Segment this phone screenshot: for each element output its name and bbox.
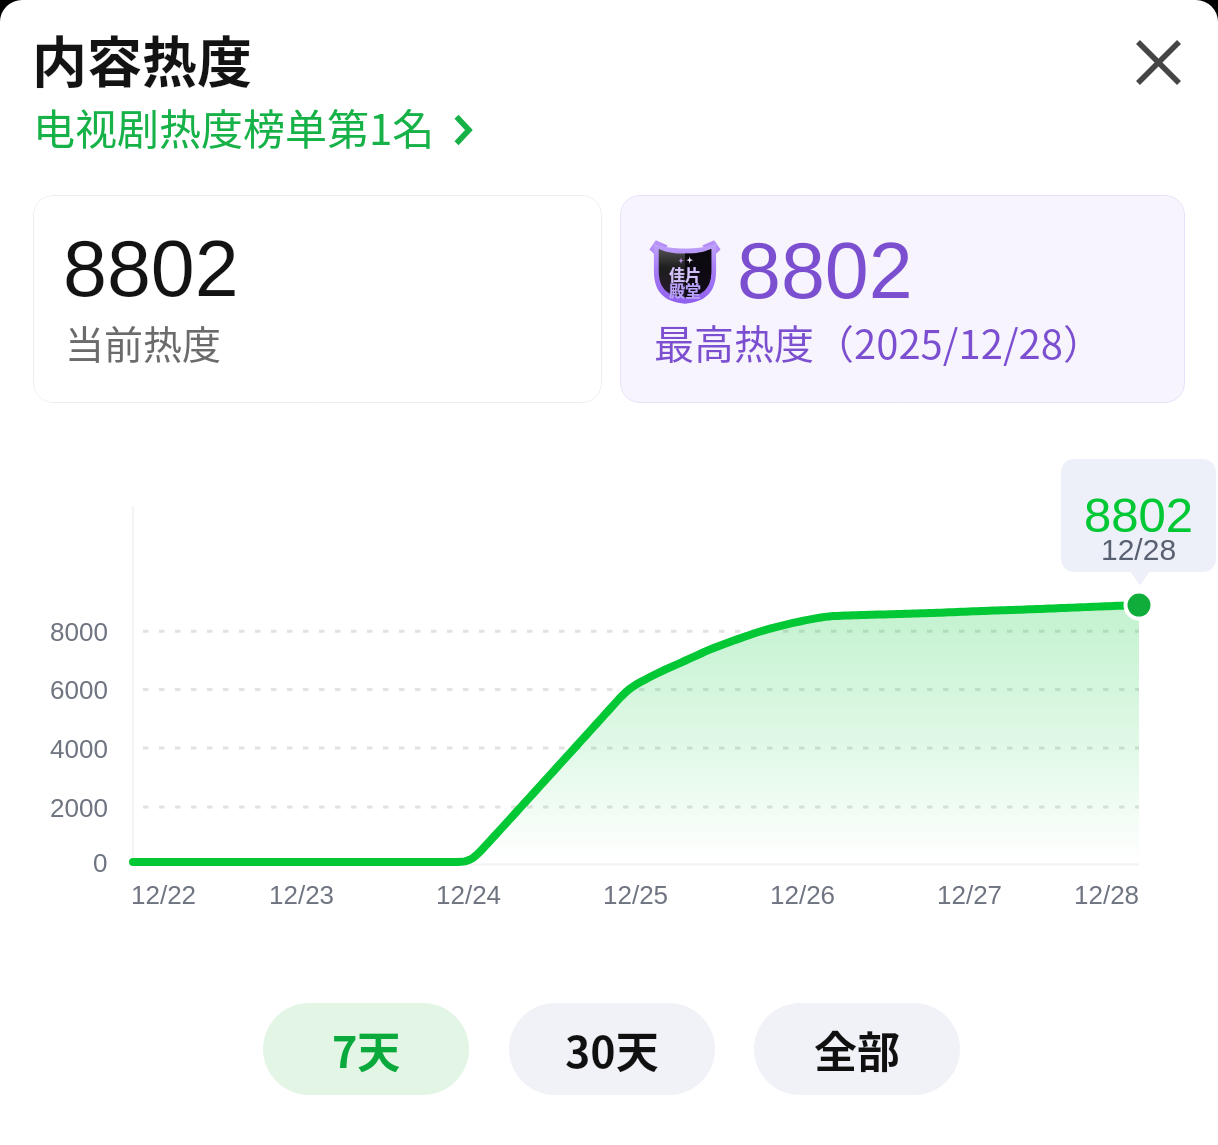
- button[interactable]: 8802: [33, 195, 602, 403]
- staticText: 当前热度: [65, 314, 222, 370]
- staticText: 12/23: [269, 880, 335, 909]
- staticText: 12/26: [770, 880, 836, 909]
- staticText: 12/24: [436, 880, 502, 909]
- staticText: 全部: [814, 1018, 900, 1080]
- staticText: 内容热度: [32, 18, 253, 98]
- staticText: 8000: [50, 617, 108, 646]
- staticText: 12/22: [131, 880, 197, 909]
- staticText: 12/28: [1074, 880, 1140, 909]
- staticText: 12/28: [1101, 533, 1177, 567]
- button[interactable]: Close: [1116, 20, 1200, 104]
- staticText: 2000: [50, 793, 108, 822]
- staticText: 30天: [565, 1018, 659, 1080]
- staticText: 8802: [63, 224, 239, 312]
- staticText: 4000: [50, 734, 108, 763]
- staticText: 12/25: [603, 880, 669, 909]
- staticText: 殿堂: [669, 278, 702, 301]
- staticText: 0: [93, 848, 108, 877]
- button[interactable]: 全部: [754, 1003, 960, 1095]
- staticText: 佳片: [669, 262, 702, 285]
- staticText: 8802: [1084, 488, 1194, 543]
- staticText: 7天: [332, 1018, 401, 1080]
- button[interactable]: 30天: [509, 1003, 715, 1095]
- button[interactable]: 7天: [263, 1003, 469, 1095]
- staticText: 电视剧热度榜单第1名: [33, 96, 435, 157]
- button[interactable]: 电视剧热度榜单第1名: [33, 96, 470, 157]
- button[interactable]: 佳片: [620, 195, 1185, 403]
- staticText: 最高热度（2025/12/28）: [654, 313, 1103, 371]
- staticText: 6000: [50, 675, 108, 704]
- staticText: 12/27: [937, 880, 1003, 909]
- staticText: 8802: [737, 226, 913, 314]
